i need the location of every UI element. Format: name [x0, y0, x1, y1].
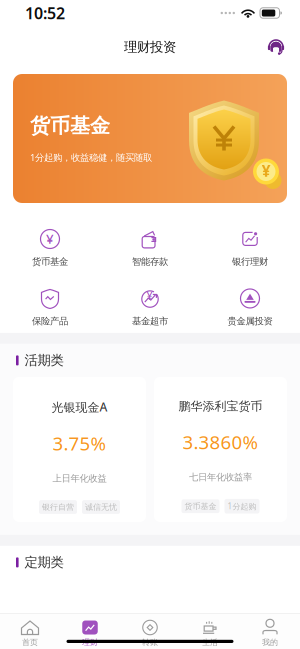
button[interactable]: 智能存款: [100, 228, 200, 267]
staticText: 银行自营: [42, 502, 74, 512]
staticText: 理财: [82, 637, 98, 647]
button[interactable]: 保险产品: [0, 287, 100, 327]
staticText: ¥: [46, 230, 54, 247]
button[interactable]: 光银现金A: [13, 377, 146, 522]
staticText: 10:52: [25, 2, 65, 24]
button[interactable]: 我的: [240, 619, 300, 647]
staticText: 1分起购，收益稳健，随买随取: [30, 151, 152, 163]
staticText: 七日年化收益率: [189, 471, 252, 483]
staticText: 定期类: [25, 554, 64, 571]
staticText: ¥: [261, 160, 270, 181]
button[interactable]: ¥: [100, 287, 200, 327]
button[interactable]: 首页: [0, 619, 60, 647]
staticText: 3.3860%: [182, 430, 258, 454]
staticText: 理财投资: [124, 39, 176, 55]
staticText: 保险产品: [32, 315, 68, 327]
staticText: 诚信无忧: [85, 502, 117, 512]
staticText: ¥: [146, 289, 152, 303]
button[interactable]: 银行理财: [200, 228, 300, 267]
button[interactable]: ¥: [0, 228, 100, 267]
staticText: 我的: [262, 637, 278, 647]
button[interactable]: 在线客服: [262, 33, 290, 61]
staticText: 转账: [142, 637, 158, 647]
staticText: 鹏华添利宝货币: [178, 399, 262, 414]
staticText: 货币基金: [30, 113, 110, 138]
staticText: 基金超市: [132, 315, 168, 327]
button[interactable]: 理财: [60, 619, 120, 647]
staticText: 贵金属投资: [227, 315, 272, 327]
button[interactable]: 货币基金: [13, 74, 287, 203]
staticText: 智能存款: [132, 256, 168, 267]
staticText: 银行理财: [232, 256, 268, 267]
staticText: 1分起购: [227, 501, 256, 511]
staticText: 货币基金: [184, 501, 216, 511]
staticText: 光银现金A: [51, 399, 107, 415]
staticText: 3.75%: [52, 431, 106, 456]
staticText: 上日年化收益: [52, 473, 106, 484]
button[interactable]: 生活: [180, 619, 240, 647]
staticText: 货币基金: [32, 256, 68, 267]
button[interactable]: 鹏华添利宝货币: [154, 377, 287, 522]
staticText: 首页: [22, 637, 38, 647]
button[interactable]: 转账: [120, 619, 180, 647]
staticText: 活期类: [25, 352, 64, 369]
staticText: 生活: [202, 637, 218, 647]
button[interactable]: 贵金属投资: [200, 287, 300, 327]
